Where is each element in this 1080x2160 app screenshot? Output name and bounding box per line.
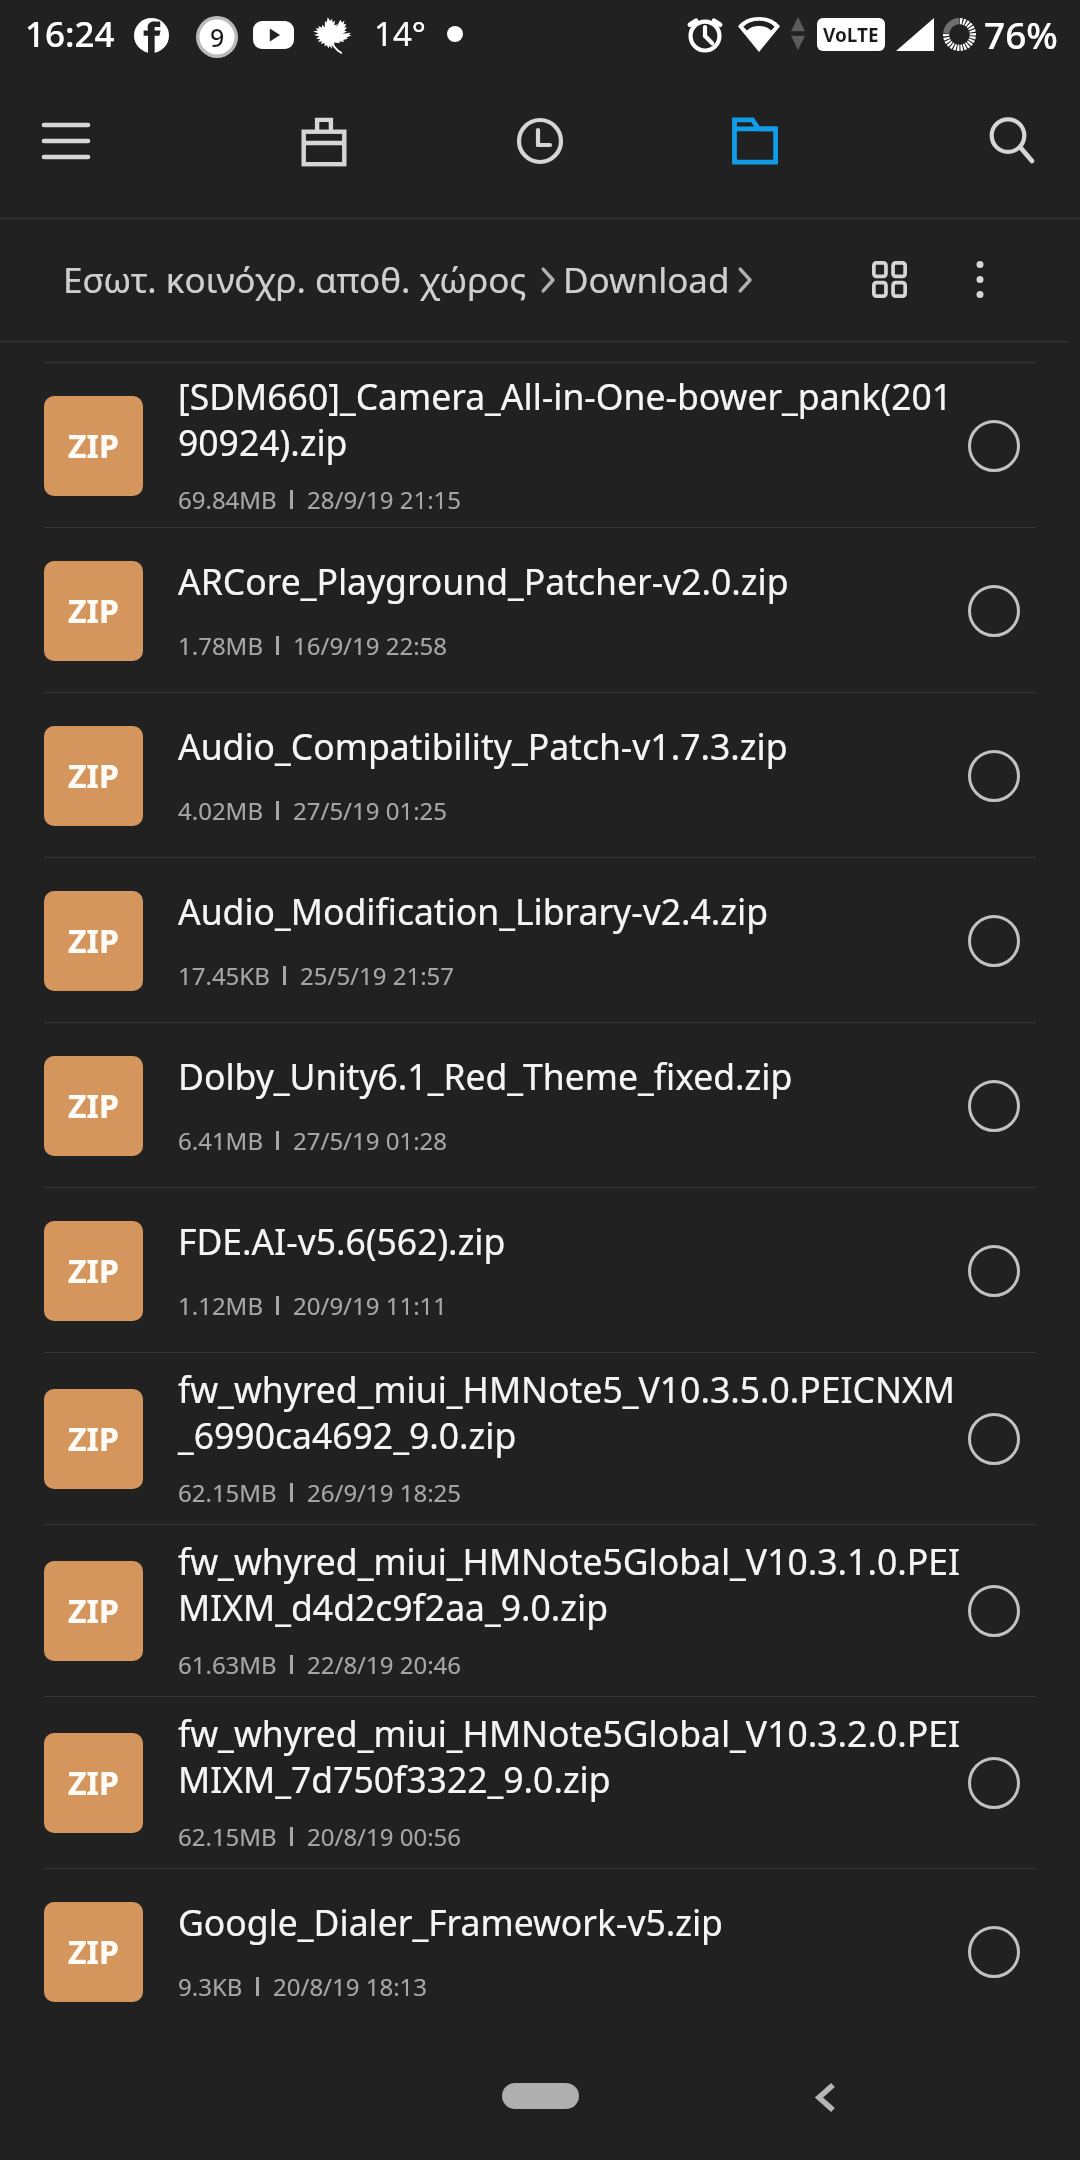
staticText: 14° bbox=[374, 11, 426, 56]
button[interactable]: Εσωτ. κοινόχρ. αποθ. χώρος bbox=[63, 218, 751, 341]
button[interactable]: Files bbox=[701, 87, 809, 195]
button[interactable]: Select item bbox=[951, 1909, 1037, 1995]
staticText: Audio_Compatibility_Patch-v1.7.3.zip bbox=[178, 722, 788, 770]
button[interactable]: ZIP bbox=[0, 1869, 1080, 2034]
staticText: ZIP bbox=[68, 1761, 119, 1805]
button[interactable]: Select item bbox=[951, 1568, 1037, 1654]
staticText: 25/5/19 21:57 bbox=[300, 959, 455, 992]
staticText: 1.12MB bbox=[178, 1289, 263, 1322]
button[interactable]: ZIP bbox=[0, 1023, 1080, 1188]
staticText: ZIP bbox=[68, 1249, 119, 1293]
button[interactable]: Search bbox=[954, 87, 1062, 195]
staticText: ZIP bbox=[68, 589, 119, 633]
button[interactable]: ZIP bbox=[0, 693, 1080, 858]
button[interactable]: ZIP bbox=[0, 858, 1080, 1023]
staticText: 20/8/19 18:13 bbox=[273, 1970, 428, 2003]
button[interactable]: Select item bbox=[951, 1063, 1037, 1149]
button[interactable]: ZIP bbox=[0, 1353, 1080, 1525]
staticText: 17.45KB bbox=[178, 959, 270, 992]
button[interactable]: Grid view bbox=[839, 218, 939, 341]
button[interactable]: ZIP bbox=[0, 1697, 1080, 1869]
button[interactable]: Select item bbox=[951, 568, 1037, 654]
button[interactable]: ZIP bbox=[0, 363, 1080, 528]
button[interactable]: Select item bbox=[951, 1740, 1037, 1826]
staticText: 9 bbox=[210, 20, 225, 54]
staticText: ZIP bbox=[68, 1084, 119, 1128]
staticText: 27/5/19 01:25 bbox=[293, 794, 448, 827]
button[interactable]: ZIP bbox=[0, 1525, 1080, 1697]
button[interactable]: More options bbox=[935, 218, 1025, 341]
button[interactable]: Select item bbox=[951, 1228, 1037, 1314]
staticText: VoLTE bbox=[823, 22, 879, 48]
staticText: 20/8/19 00:56 bbox=[307, 1820, 462, 1853]
staticText: 27/5/19 01:28 bbox=[293, 1124, 448, 1157]
staticText: ARCore_Playground_Patcher-v2.0.zip bbox=[178, 557, 789, 605]
button[interactable]: Menu bbox=[12, 87, 120, 195]
button[interactable]: Select item bbox=[951, 898, 1037, 984]
staticText: ZIP bbox=[68, 1589, 119, 1633]
staticText: 16/9/19 22:58 bbox=[293, 629, 448, 662]
staticText: Download bbox=[563, 256, 730, 304]
staticText: 62.15MB bbox=[178, 1476, 277, 1509]
button[interactable]: Select item bbox=[951, 733, 1037, 819]
staticText: ZIP bbox=[68, 1930, 119, 1974]
staticText: 16:24 bbox=[25, 10, 115, 58]
staticText: 76% bbox=[984, 9, 1058, 59]
button[interactable]: Home bbox=[502, 2083, 579, 2109]
staticText: FDE.AI-v5.6(562).zip bbox=[178, 1217, 506, 1265]
button[interactable]: Select item bbox=[951, 403, 1037, 489]
staticText: 4.02MB bbox=[178, 794, 263, 827]
staticText: 1.78MB bbox=[178, 629, 263, 662]
staticText: fw_whyred_miui_HMNote5Global_V10.3.1.0.P… bbox=[178, 1537, 960, 1632]
staticText: 26/9/19 18:25 bbox=[307, 1476, 462, 1509]
button[interactable]: Recent bbox=[486, 87, 594, 195]
staticText: Google_Dialer_Framework-v5.zip bbox=[178, 1898, 723, 1946]
button[interactable]: Clean up bbox=[270, 87, 378, 195]
button[interactable]: Back bbox=[781, 2052, 871, 2142]
staticText: Dolby_Unity6.1_Red_Theme_fixed.zip bbox=[178, 1052, 793, 1100]
staticText: 61.63MB bbox=[178, 1648, 277, 1681]
staticText: 22/8/19 20:46 bbox=[307, 1648, 462, 1681]
staticText: Audio_Modification_Library-v2.4.zip bbox=[178, 887, 769, 935]
staticText: fw_whyred_miui_HMNote5Global_V10.3.2.0.P… bbox=[178, 1709, 960, 1804]
staticText: 20/9/19 11:11 bbox=[293, 1289, 448, 1322]
button[interactable]: Select item bbox=[951, 1396, 1037, 1482]
staticText: 28/9/19 21:15 bbox=[307, 483, 462, 516]
button[interactable]: ZIP bbox=[0, 528, 1080, 693]
staticText: fw_whyred_miui_HMNote5_V10.3.5.0.PEICNXM… bbox=[178, 1365, 956, 1460]
staticText: 62.15MB bbox=[178, 1820, 277, 1853]
staticText: ZIP bbox=[68, 919, 119, 963]
staticText: ZIP bbox=[68, 424, 119, 468]
staticText: ZIP bbox=[68, 754, 119, 798]
staticText: 9.3KB bbox=[178, 1970, 243, 2003]
button[interactable]: ZIP bbox=[0, 1188, 1080, 1353]
staticText: ZIP bbox=[68, 1417, 119, 1461]
staticText: [SDM660]_Camera_All-in-One-bower_pank(20… bbox=[178, 372, 953, 467]
staticText: 69.84MB bbox=[178, 483, 277, 516]
staticText: Εσωτ. κοινόχρ. αποθ. χώρος bbox=[63, 256, 527, 304]
staticText: 6.41MB bbox=[178, 1124, 263, 1157]
